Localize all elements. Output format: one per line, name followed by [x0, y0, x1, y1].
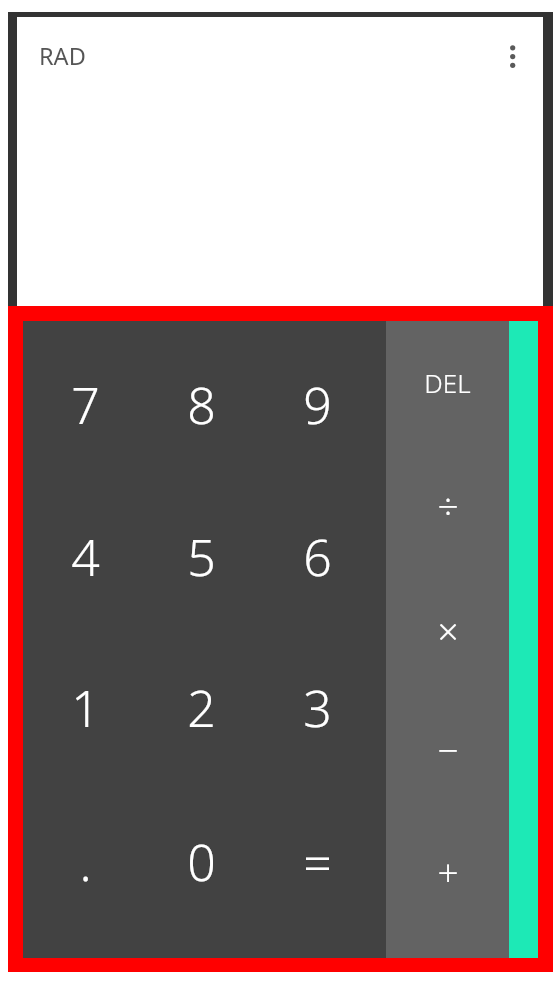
button[interactable]: Divide — [386, 449, 509, 577]
button[interactable]: Decimal point — [23, 799, 144, 958]
button[interactable]: 9 — [265, 321, 386, 481]
staticText: 9 — [303, 371, 332, 439]
staticText: 5 — [187, 523, 216, 591]
staticText: 8 — [187, 371, 216, 439]
staticText: + — [437, 846, 459, 896]
staticText: 0 — [187, 828, 216, 896]
staticText: RAD — [39, 40, 86, 72]
button[interactable]: 7 — [23, 321, 144, 481]
staticText: 4 — [71, 523, 100, 591]
button[interactable]: 4 — [23, 481, 144, 640]
button[interactable]: Add — [386, 831, 509, 958]
button[interactable]: RAD — [24, 32, 94, 80]
button[interactable]: 6 — [265, 481, 386, 640]
button[interactable]: Subtract — [386, 704, 509, 831]
button[interactable]: 2 — [144, 640, 265, 799]
button[interactable]: 8 — [144, 321, 265, 481]
staticText: − — [437, 724, 459, 774]
button[interactable]: 3 — [265, 640, 386, 799]
staticText: = — [303, 828, 332, 896]
staticText: 7 — [71, 371, 100, 439]
button[interactable]: Multiply — [386, 577, 509, 704]
button[interactable]: Delete — [386, 321, 509, 449]
button[interactable]: Equals — [265, 799, 386, 958]
staticText: DEL — [424, 365, 471, 400]
button[interactable]: More options — [488, 32, 536, 80]
staticText: ÷ — [437, 480, 459, 530]
staticText: 2 — [187, 674, 216, 742]
staticText: 6 — [303, 523, 332, 591]
button[interactable]: 1 — [23, 640, 144, 799]
staticText: 3 — [303, 674, 332, 742]
button[interactable]: 0 — [144, 799, 265, 958]
staticText: 1 — [71, 674, 100, 742]
staticText: . — [79, 828, 92, 896]
staticText: × — [437, 605, 459, 655]
button[interactable]: 5 — [144, 481, 265, 640]
